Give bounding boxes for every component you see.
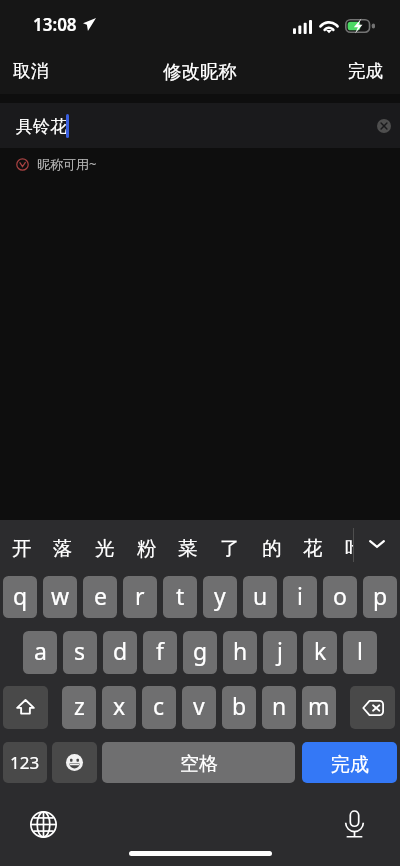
button[interactable]: t — [163, 576, 197, 618]
button[interactable]: Emoji — [52, 742, 97, 783]
staticText: v — [193, 690, 205, 721]
staticText: 修改昵称 — [163, 60, 237, 83]
staticText: g — [193, 635, 208, 666]
button[interactable]: 123 — [3, 742, 47, 783]
button[interactable]: 空格 — [102, 742, 295, 783]
button[interactable]: w — [43, 576, 77, 618]
button[interactable]: u — [243, 576, 277, 618]
staticText: m — [308, 690, 330, 721]
staticText: q — [13, 580, 28, 611]
button[interactable]: 取消 — [0, 48, 61, 94]
button[interactable]: Switch language — [24, 805, 63, 844]
button[interactable]: g — [183, 631, 217, 674]
button[interactable]: s — [63, 631, 97, 674]
button[interactable]: 粉 — [126, 520, 168, 576]
button[interactable]: Clear text — [371, 113, 397, 139]
staticText: p — [373, 580, 388, 611]
button[interactable]: e — [83, 576, 117, 618]
staticText: r — [135, 580, 145, 611]
staticText: 空格 — [180, 752, 218, 776]
staticText: 的 — [262, 536, 282, 561]
staticText: 粉 — [137, 536, 157, 561]
button[interactable]: Backspace — [350, 686, 395, 729]
staticText: 开 — [12, 536, 32, 561]
staticText: 完成 — [348, 60, 383, 82]
staticText: b — [232, 690, 247, 721]
button[interactable]: 了 — [209, 520, 251, 576]
staticText: d — [113, 635, 128, 666]
staticText: 123 — [10, 751, 40, 774]
staticText: o — [333, 580, 347, 611]
button[interactable]: i — [283, 576, 317, 618]
button[interactable]: z — [62, 686, 96, 729]
button[interactable]: a — [23, 631, 57, 674]
button[interactable]: y — [203, 576, 237, 618]
staticText: 取消 — [13, 60, 48, 82]
staticText: c — [153, 690, 165, 721]
button[interactable]: 叶 — [334, 520, 353, 576]
button[interactable]: q — [3, 576, 37, 618]
staticText: 完成 — [331, 753, 369, 777]
staticText: u — [253, 580, 268, 611]
staticText: e — [94, 580, 107, 611]
staticText: n — [272, 690, 287, 721]
staticText: 昵称可用~ — [37, 155, 97, 173]
staticText: 花 — [303, 536, 323, 561]
staticText: 叶 — [345, 536, 353, 561]
button[interactable]: Collapse keyboard — [354, 520, 400, 576]
button[interactable]: p — [363, 576, 397, 618]
staticText: 了 — [220, 536, 240, 561]
button[interactable]: c — [142, 686, 176, 729]
button[interactable]: r — [123, 576, 157, 618]
staticText: w — [51, 580, 70, 611]
button[interactable]: k — [303, 631, 337, 674]
button[interactable]: 菜 — [167, 520, 209, 576]
staticText: y — [214, 580, 226, 611]
staticText: x — [113, 690, 126, 721]
button[interactable]: v — [182, 686, 216, 729]
button[interactable]: Shift — [3, 686, 48, 729]
button[interactable]: h — [223, 631, 257, 674]
button[interactable]: 光 — [84, 520, 126, 576]
button[interactable]: 完成 — [334, 48, 400, 94]
button[interactable]: 落 — [42, 520, 84, 576]
button[interactable]: n — [262, 686, 296, 729]
button[interactable]: d — [103, 631, 137, 674]
staticText: a — [34, 635, 47, 666]
button[interactable]: f — [143, 631, 177, 674]
staticText: j — [277, 635, 283, 666]
staticText: h — [233, 635, 248, 666]
button[interactable]: 开 — [1, 520, 43, 576]
staticText: 光 — [95, 536, 115, 561]
staticText: l — [357, 635, 363, 666]
staticText: 落 — [53, 536, 73, 561]
button[interactable]: l — [343, 631, 377, 674]
staticText: s — [74, 635, 86, 666]
button[interactable]: 的 — [251, 520, 293, 576]
staticText: k — [314, 635, 327, 666]
staticText: i — [297, 580, 303, 611]
button[interactable]: 花 — [292, 520, 334, 576]
staticText: 具铃花 — [16, 116, 67, 137]
button[interactable]: 完成 — [302, 742, 397, 783]
button[interactable]: o — [323, 576, 357, 618]
button[interactable]: m — [302, 686, 336, 729]
staticText: z — [74, 690, 85, 721]
button[interactable]: x — [102, 686, 136, 729]
staticText: f — [156, 635, 164, 666]
button[interactable]: Voice input — [335, 805, 374, 844]
button[interactable]: b — [222, 686, 256, 729]
staticText: t — [176, 580, 185, 611]
staticText: 菜 — [178, 536, 198, 561]
button[interactable]: j — [263, 631, 297, 674]
staticText: 13:08 — [33, 13, 77, 36]
